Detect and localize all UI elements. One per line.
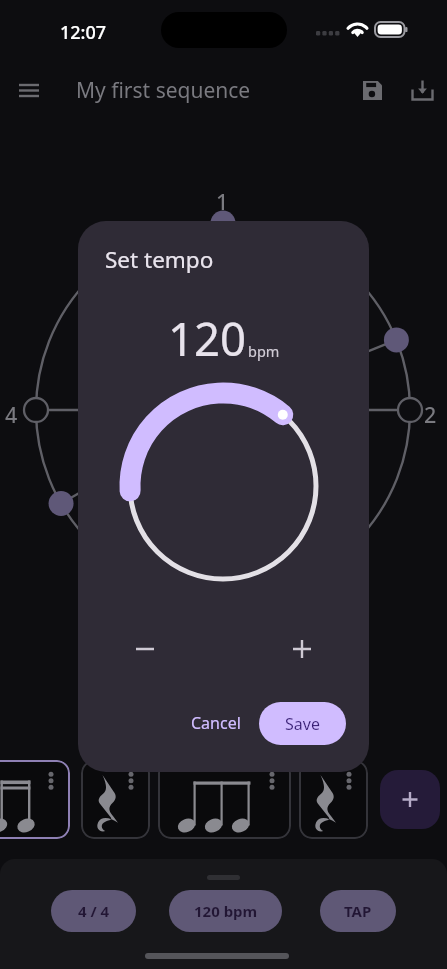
button[interactable] — [158, 760, 291, 839]
button[interactable]: Increase tempo — [279, 626, 325, 672]
staticText: My first sequence — [76, 76, 251, 105]
staticText: 1 — [216, 187, 229, 216]
button[interactable]: 4 / 4 — [51, 890, 136, 932]
button[interactable]: TAP — [320, 890, 396, 932]
button[interactable]: Add — [380, 770, 440, 829]
staticText: Set tempo — [105, 244, 214, 275]
staticText: 2 — [424, 400, 437, 429]
staticText: 4 — [5, 400, 18, 429]
staticText: Cancel — [191, 712, 241, 734]
button[interactable] — [81, 760, 150, 839]
button[interactable] — [0, 760, 70, 839]
button[interactable]: Cancel — [182, 702, 250, 744]
staticText: TAP — [344, 901, 372, 921]
staticText: bpm — [248, 341, 280, 361]
staticText: 120 bpm — [194, 901, 258, 921]
staticText: 12:07 — [60, 20, 107, 45]
button[interactable]: Download — [400, 68, 445, 113]
button[interactable]: Decrease tempo — [122, 626, 168, 672]
button[interactable]: 120 bpm — [169, 890, 282, 932]
staticText: 120 — [168, 307, 247, 369]
button[interactable] — [299, 760, 368, 839]
button[interactable]: Save — [259, 702, 346, 745]
button[interactable]: Menu — [7, 68, 51, 112]
staticText: 4 / 4 — [78, 901, 110, 921]
button[interactable]: Save — [350, 68, 395, 113]
staticText: Save — [285, 713, 320, 735]
